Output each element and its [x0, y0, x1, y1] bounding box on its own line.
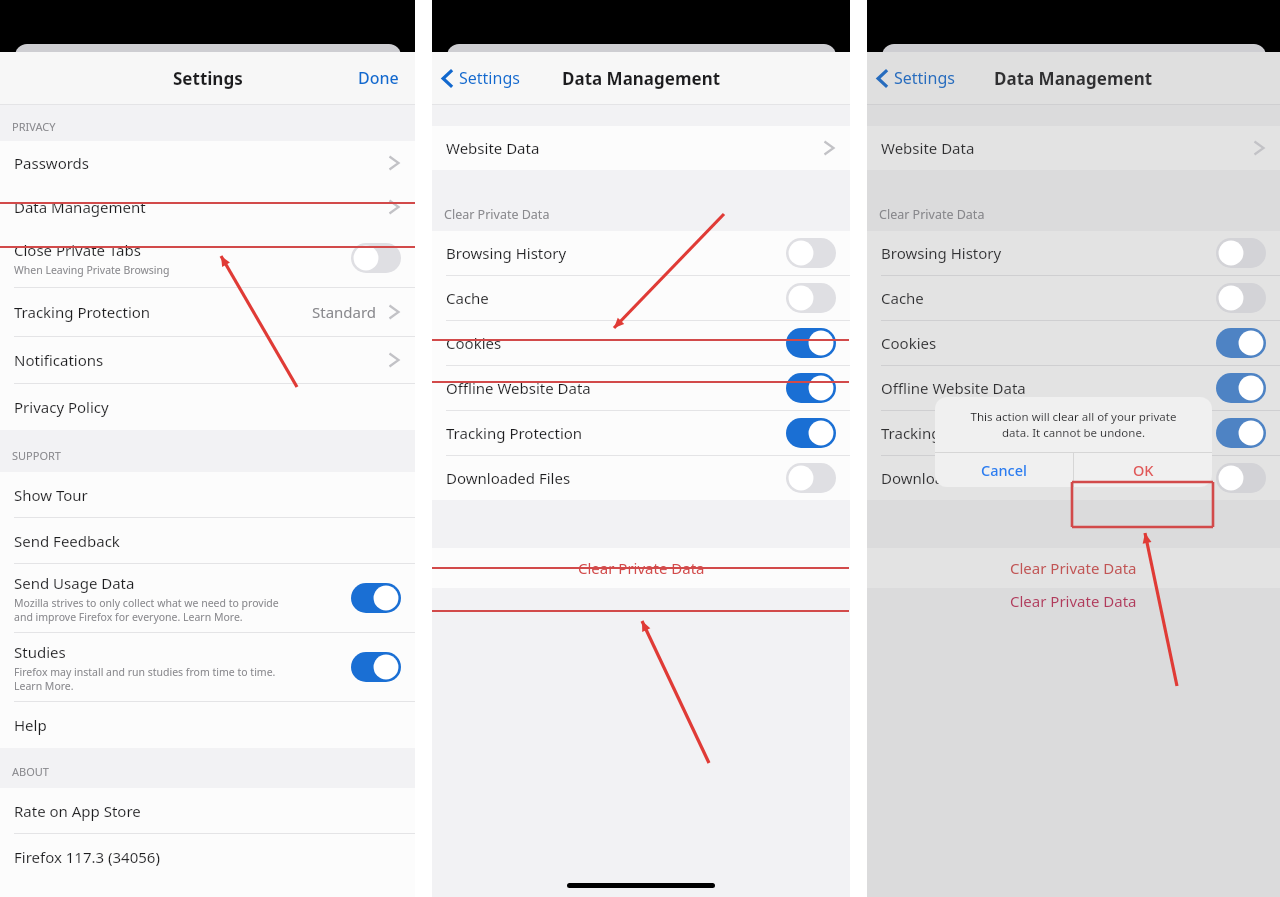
button[interactable]: Browsing History: [867, 231, 1280, 275]
staticText: This action will clear all of your priva…: [949, 409, 1198, 440]
button[interactable]: [786, 328, 836, 358]
button[interactable]: [351, 652, 401, 682]
button[interactable]: Website Data: [432, 126, 850, 170]
staticText: Privacy Policy: [14, 397, 109, 417]
button[interactable]: Cookies: [432, 321, 850, 365]
button[interactable]: Rate on App Store: [0, 788, 415, 833]
button[interactable]: [351, 243, 401, 273]
button[interactable]: Send Usage Data: [0, 564, 415, 632]
staticText: Settings: [173, 67, 243, 90]
staticText: Done: [358, 67, 399, 89]
button[interactable]: Downloaded Files: [432, 456, 850, 500]
button[interactable]: Close Private Tabs: [0, 229, 415, 287]
staticText: Website Data: [881, 138, 975, 158]
staticText: Clear Private Data: [1010, 591, 1137, 611]
staticText: Cache: [881, 288, 924, 308]
button[interactable]: [786, 418, 836, 448]
button[interactable]: OK: [1074, 453, 1212, 487]
staticText: Help: [14, 715, 47, 735]
staticText: Studies: [14, 642, 66, 662]
button[interactable]: Done: [342, 55, 415, 101]
button[interactable]: [1216, 238, 1266, 268]
staticText: Clear Private Data: [1010, 558, 1137, 578]
staticText: Browsing History: [881, 243, 1002, 263]
button[interactable]: [1216, 328, 1266, 358]
button[interactable]: Cache: [867, 276, 1280, 320]
staticText: Cache: [446, 288, 489, 308]
button[interactable]: [1216, 373, 1266, 403]
staticText: When Leaving Private Browsing: [14, 263, 170, 277]
button[interactable]: Send Feedback: [0, 518, 415, 563]
staticText: Downloaded Files: [446, 468, 571, 488]
button[interactable]: Website Data: [867, 126, 1280, 170]
button[interactable]: Show Tour: [0, 472, 415, 517]
button[interactable]: Clear Private Data: [867, 548, 1280, 588]
staticText: Clear Private Data: [879, 206, 985, 223]
button[interactable]: Help: [0, 702, 415, 748]
staticText: Website Data: [446, 138, 540, 158]
button[interactable]: Studies: [0, 633, 415, 701]
staticText: Data Management: [562, 67, 721, 90]
button[interactable]: Settings: [867, 57, 963, 99]
staticText: Rate on App Store: [14, 801, 141, 821]
staticText: Firefox may install and run studies from…: [14, 665, 276, 693]
staticText: PRIVACY: [12, 119, 56, 134]
button[interactable]: Clear Private Data: [432, 548, 850, 588]
button[interactable]: Firefox 117.3 (34056): [0, 834, 415, 879]
button[interactable]: [351, 583, 401, 613]
staticText: Settings: [459, 67, 520, 89]
button[interactable]: Settings: [432, 57, 528, 99]
button[interactable]: Notifications: [0, 337, 415, 383]
staticText: Clear Private Data: [444, 206, 550, 223]
button[interactable]: [786, 238, 836, 268]
staticText: SUPPORT: [12, 448, 61, 463]
staticText: Data Management: [14, 197, 146, 217]
button[interactable]: Browsing History: [432, 231, 850, 275]
staticText: Browsing History: [446, 243, 567, 263]
staticText: Cookies: [881, 333, 937, 353]
button[interactable]: Tracking Protection: [432, 411, 850, 455]
button[interactable]: Cookies: [867, 321, 1280, 365]
button[interactable]: Cancel: [935, 453, 1073, 487]
staticText: Tracking Protection: [446, 423, 583, 443]
staticText: Show Tour: [14, 485, 88, 505]
staticText: Close Private Tabs: [14, 240, 141, 260]
button[interactable]: [786, 463, 836, 493]
button[interactable]: Offline Website Data: [432, 366, 850, 410]
button[interactable]: Offline Website Data: [867, 366, 1280, 410]
button[interactable]: Cache: [432, 276, 850, 320]
staticText: OK: [1133, 460, 1154, 480]
button[interactable]: Downloaded Files: [867, 456, 1280, 500]
staticText: Data Management: [994, 67, 1153, 90]
staticText: Mozilla strives to only collect what we …: [14, 596, 279, 624]
button[interactable]: Tracking Protection: [867, 411, 1280, 455]
staticText: Tracking Protection: [14, 302, 151, 322]
staticText: Cancel: [981, 460, 1027, 480]
staticText: ABOUT: [12, 764, 49, 779]
staticText: Firefox 117.3 (34056): [14, 847, 160, 867]
staticText: Tracking Protection: [881, 423, 1018, 443]
staticText: Downloaded Files: [881, 468, 1006, 488]
staticText: Offline Website Data: [881, 378, 1026, 398]
staticText: Passwords: [14, 153, 90, 173]
button[interactable]: [786, 373, 836, 403]
button[interactable]: Tracking Protection: [0, 288, 415, 336]
staticText: Cookies: [446, 333, 502, 353]
button[interactable]: [1216, 283, 1266, 313]
button[interactable]: Privacy Policy: [0, 384, 415, 430]
staticText: Offline Website Data: [446, 378, 591, 398]
staticText: Standard: [312, 302, 377, 322]
button[interactable]: [1216, 418, 1266, 448]
staticText: Send Feedback: [14, 531, 120, 551]
staticText: Settings: [894, 67, 955, 89]
button[interactable]: Passwords: [0, 141, 415, 185]
button[interactable]: [1216, 463, 1266, 493]
staticText: Send Usage Data: [14, 573, 135, 593]
staticText: Notifications: [14, 350, 104, 370]
button[interactable]: Data Management: [0, 185, 415, 229]
staticText: Clear Private Data: [578, 558, 705, 578]
button[interactable]: [786, 283, 836, 313]
